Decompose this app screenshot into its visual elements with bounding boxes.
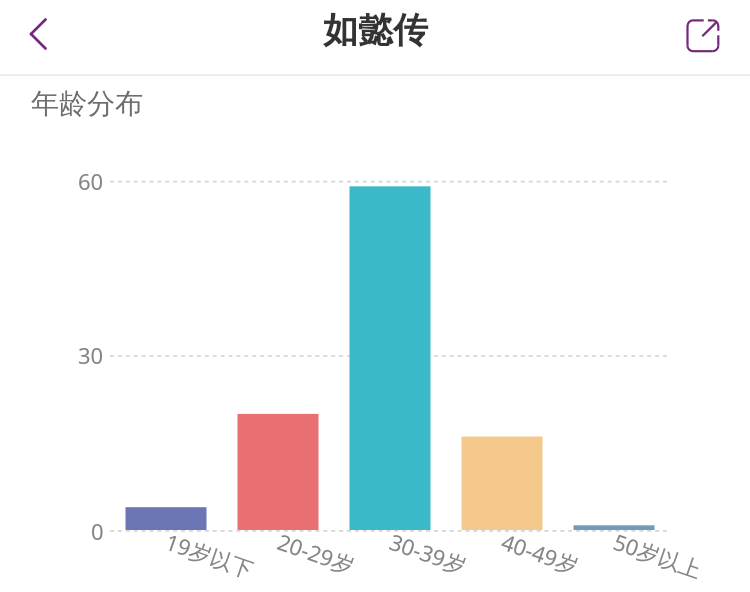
button[interactable]: Share [660, 1, 750, 76]
staticText: 年龄分布 [31, 86, 143, 121]
staticText: 如懿传 [323, 8, 428, 52]
button[interactable]: Back [0, 1, 76, 76]
